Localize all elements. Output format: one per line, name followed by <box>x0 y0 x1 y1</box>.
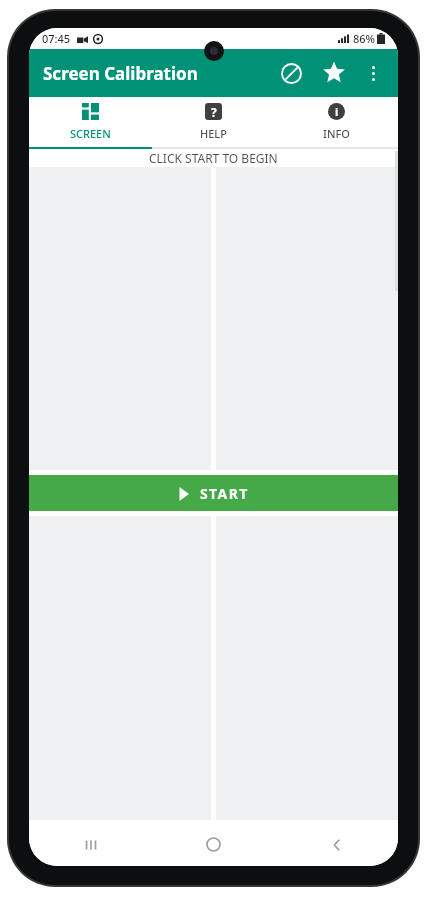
button[interactable]: ? <box>152 97 275 147</box>
staticText: CLICK START TO BEGIN <box>149 150 278 166</box>
staticText: ? <box>211 104 217 120</box>
staticText: i <box>335 104 339 119</box>
button[interactable]: Home <box>152 823 275 866</box>
staticText: HELP <box>200 126 227 141</box>
button[interactable]: More options <box>356 56 390 90</box>
staticText: START <box>200 484 249 503</box>
staticText: Screen Calibration <box>43 62 198 85</box>
button[interactable]: Favorite <box>317 56 351 90</box>
staticText: 07:45 <box>42 31 71 46</box>
staticText: SCREEN <box>70 126 111 141</box>
staticText: 86% <box>353 31 375 46</box>
button[interactable]: SCREEN <box>29 97 152 147</box>
button[interactable]: Recent apps <box>29 823 152 866</box>
button[interactable]: START <box>29 475 398 511</box>
button[interactable]: Back <box>275 823 398 866</box>
button[interactable]: Remove ads <box>274 56 308 90</box>
staticText: INFO <box>323 126 350 141</box>
button[interactable]: i <box>275 97 398 147</box>
